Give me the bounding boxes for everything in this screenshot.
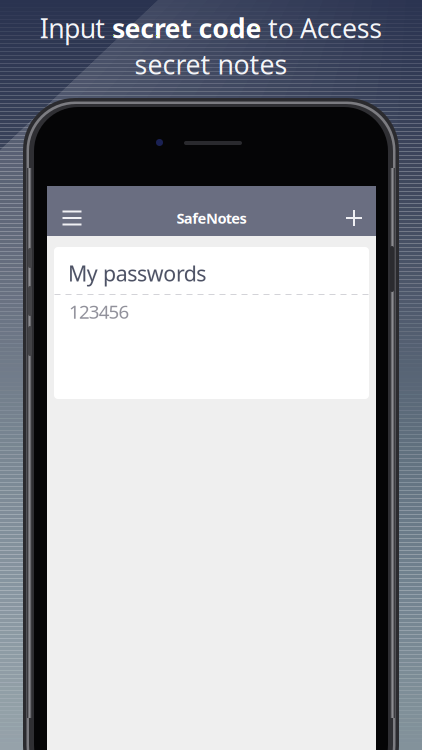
button[interactable]: My passwords bbox=[54, 247, 369, 399]
staticText: SafeNotes bbox=[176, 208, 247, 228]
button[interactable]: Add note bbox=[334, 200, 374, 236]
staticText: secret code bbox=[112, 10, 261, 45]
staticText: secret notes bbox=[134, 46, 287, 82]
staticText: 123456 bbox=[69, 299, 129, 324]
staticText: to Access bbox=[261, 10, 382, 45]
staticText: Input bbox=[40, 10, 112, 45]
button[interactable]: Menu bbox=[52, 200, 92, 236]
staticText: My passwords bbox=[68, 259, 206, 287]
